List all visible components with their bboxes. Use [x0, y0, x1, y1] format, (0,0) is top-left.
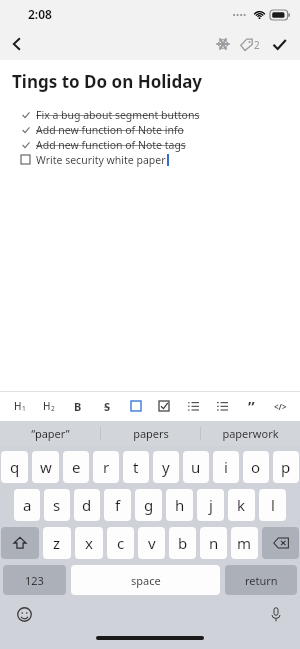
button[interactable]: Dictation	[266, 604, 286, 624]
staticText: i	[224, 457, 228, 477]
button[interactable]: z	[43, 527, 71, 559]
button[interactable]: Bold	[68, 393, 88, 419]
staticText: space	[131, 573, 161, 588]
staticText: paperwork	[222, 426, 279, 441]
button[interactable]: Fix a bug about segment buttons	[0, 107, 300, 122]
staticText: papers	[133, 426, 169, 441]
staticText: v	[148, 533, 156, 553]
staticText: Add new function of Note info	[36, 123, 184, 137]
staticText: Tings to Do on Holiday	[12, 70, 203, 93]
button[interactable]: Write security white paper	[0, 152, 300, 167]
staticText: k	[237, 495, 246, 515]
staticText: 2:08	[28, 6, 52, 22]
button[interactable]: u	[183, 451, 209, 483]
staticText: t	[133, 457, 139, 477]
button[interactable]: h	[166, 489, 193, 521]
button[interactable]: Snowflake	[209, 30, 237, 58]
button[interactable]: H1	[10, 393, 30, 419]
button[interactable]: “paper”	[0, 421, 100, 446]
button[interactable]: q	[1, 451, 28, 483]
button[interactable]: j	[197, 489, 224, 521]
button[interactable]: Add new function of Note info	[0, 122, 300, 137]
staticText: a	[23, 495, 32, 515]
staticText: 2	[51, 404, 55, 413]
staticText: return	[245, 573, 278, 588]
staticText: e	[72, 457, 81, 477]
button[interactable]: Quote	[241, 393, 261, 419]
button[interactable]: H2	[39, 393, 59, 419]
staticText: “paper”	[31, 426, 70, 441]
staticText: 123	[25, 573, 44, 588]
staticText: h	[175, 495, 185, 515]
button[interactable]: s	[44, 489, 70, 521]
staticText: l	[271, 495, 275, 515]
button[interactable]: Shift	[1, 527, 39, 559]
button[interactable]: g	[135, 489, 162, 521]
button[interactable]: paperwork	[201, 421, 300, 446]
button[interactable]: o	[243, 451, 269, 483]
button[interactable]: papers	[101, 421, 200, 446]
staticText: ”	[248, 396, 255, 416]
button[interactable]: Tags	[237, 37, 262, 52]
staticText: o	[251, 457, 261, 477]
button[interactable]: k	[228, 489, 255, 521]
staticText: B	[74, 399, 82, 414]
staticText: g	[144, 495, 154, 515]
button[interactable]: Bulleted list	[183, 393, 203, 419]
button[interactable]: d	[74, 489, 100, 521]
button[interactable]: x	[75, 527, 103, 559]
button[interactable]: n	[200, 527, 227, 559]
button[interactable]: a	[14, 489, 40, 521]
button[interactable]: y	[153, 451, 179, 483]
staticText: 1	[22, 404, 26, 413]
staticText: H	[43, 399, 51, 413]
staticText: y	[162, 457, 170, 477]
button[interactable]: w	[32, 451, 59, 483]
staticText: Fix a bug about segment buttons	[36, 108, 200, 122]
button[interactable]: return	[225, 565, 297, 595]
button[interactable]: Back	[0, 28, 34, 60]
staticText: m	[237, 533, 252, 553]
staticText: d	[82, 495, 92, 515]
staticText: Write security white paper	[36, 153, 166, 167]
staticText: p	[281, 457, 291, 477]
button[interactable]: r	[93, 451, 119, 483]
button[interactable]: t	[123, 451, 149, 483]
staticText: </>	[274, 401, 287, 412]
staticText: Add new function of Note tags	[36, 138, 186, 152]
staticText: s	[53, 495, 61, 515]
staticText: b	[178, 533, 188, 553]
button[interactable]: Checkbox	[126, 393, 146, 419]
button[interactable]: p	[273, 451, 299, 483]
button[interactable]: m	[231, 527, 258, 559]
staticText: r	[103, 457, 110, 477]
staticText: H	[14, 399, 22, 413]
staticText: x	[85, 533, 93, 553]
button[interactable]: Numbered list	[212, 393, 232, 419]
staticText: 2	[254, 38, 260, 52]
button[interactable]: v	[138, 527, 165, 559]
staticText: f	[115, 495, 121, 515]
button[interactable]: Add new function of Note tags	[0, 137, 300, 152]
staticText: j	[209, 495, 213, 515]
staticText: S	[104, 399, 111, 414]
button[interactable]: c	[107, 527, 134, 559]
button[interactable]: 123	[3, 565, 66, 595]
staticText: q	[10, 457, 20, 477]
button[interactable]: Strikethrough	[97, 393, 117, 419]
button[interactable]: Checklist	[154, 393, 174, 419]
button[interactable]: l	[259, 489, 286, 521]
button[interactable]: b	[169, 527, 196, 559]
staticText: w	[40, 457, 52, 477]
button[interactable]: Done	[264, 29, 294, 59]
button[interactable]: e	[63, 451, 89, 483]
button[interactable]: i	[213, 451, 239, 483]
staticText: c	[117, 533, 125, 553]
button[interactable]: Backspace	[262, 527, 299, 559]
button[interactable]: Emoji	[14, 604, 34, 624]
button[interactable]: Code	[270, 393, 290, 419]
button[interactable]: f	[104, 489, 131, 521]
staticText: z	[53, 533, 61, 553]
button[interactable]: space	[71, 565, 220, 595]
staticText: n	[209, 533, 219, 553]
